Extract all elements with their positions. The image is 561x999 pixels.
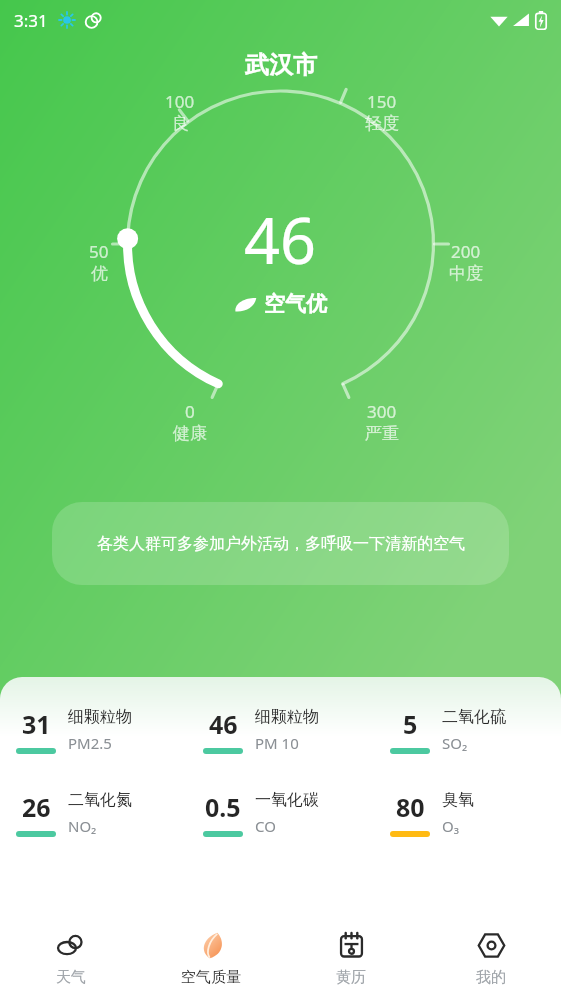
staticText: 3:31 [14, 9, 48, 32]
button[interactable]: 31 [0, 707, 187, 754]
staticText: 26 [22, 790, 51, 824]
staticText: 100 [165, 90, 195, 113]
button[interactable]: 26 [0, 790, 187, 837]
staticText: 中度 [449, 263, 483, 284]
staticText: 细颗粒物 [68, 707, 132, 727]
staticText: 武汉市 [245, 50, 317, 80]
staticText: 二氧化硫 [442, 707, 506, 727]
button[interactable]: 46 [187, 707, 374, 754]
staticText: 46 [209, 707, 238, 741]
staticText: 46 [244, 197, 317, 283]
staticText: 天气 [56, 968, 86, 987]
staticText: 各类人群可多参加户外活动，多呼吸一下清新的空气 [97, 534, 465, 554]
button[interactable]: 黄历 [281, 919, 421, 999]
button[interactable]: 5 [374, 707, 561, 754]
staticText: 空气质量 [181, 968, 241, 987]
staticText: 一氧化碳 [255, 790, 319, 810]
button[interactable]: 80 [374, 790, 561, 837]
button[interactable]: 0.5 [187, 790, 374, 837]
staticText: 50 [89, 240, 109, 263]
staticText: 80 [396, 790, 425, 824]
staticText: PM2.5 [68, 733, 112, 753]
staticText: 空气优 [264, 291, 327, 317]
staticText: 二氧化氮 [68, 790, 132, 810]
staticText: 黄历 [336, 968, 366, 987]
staticText: PM 10 [255, 733, 299, 753]
staticText: 健康 [173, 423, 207, 444]
staticText: O₃ [442, 816, 459, 836]
staticText: 150 [367, 90, 397, 113]
staticText: 轻度 [365, 113, 399, 134]
staticText: 细颗粒物 [255, 707, 319, 727]
staticText: 0.5 [205, 790, 241, 824]
staticText: 31 [22, 707, 51, 741]
staticText: 严重 [365, 423, 399, 444]
staticText: 200 [451, 240, 481, 263]
button[interactable]: 空气质量 [141, 919, 281, 999]
button[interactable]: 各类人群可多参加户外活动，多呼吸一下清新的空气 [52, 502, 509, 585]
staticText: 0 [185, 400, 195, 423]
button[interactable]: 我的 [421, 919, 561, 999]
staticText: 300 [367, 400, 397, 423]
staticText: CO [255, 816, 276, 836]
staticText: 我的 [476, 968, 506, 987]
staticText: NO₂ [68, 816, 97, 836]
staticText: 5 [403, 707, 418, 741]
staticText: 优 [91, 263, 108, 284]
button[interactable]: 天气 [0, 919, 141, 999]
staticText: 臭氧 [442, 790, 474, 810]
staticText: 良 [172, 113, 189, 134]
staticText: SO₂ [442, 733, 468, 753]
